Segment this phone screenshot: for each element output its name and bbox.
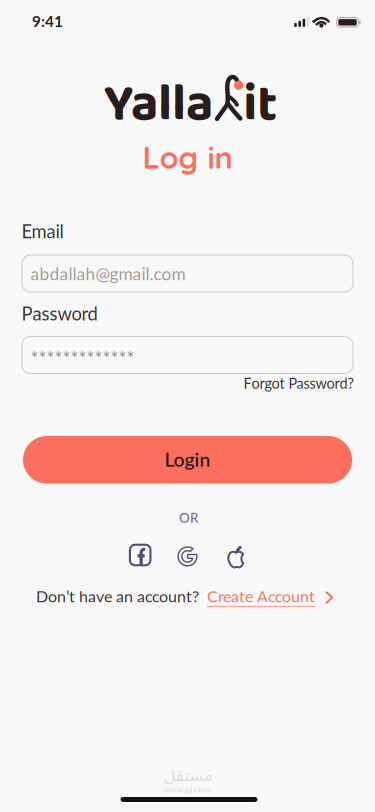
staticText: ************* <box>30 347 134 369</box>
staticText: Don’t have an account? <box>36 586 199 606</box>
staticText: it <box>243 64 277 146</box>
staticText: Create Account <box>207 586 315 606</box>
staticText: Log in <box>142 138 232 176</box>
staticText: Yalla <box>104 64 213 146</box>
staticText: Password <box>21 302 97 324</box>
staticText: mostaql.com <box>164 785 210 794</box>
button[interactable]: Forgot Password? <box>243 375 353 392</box>
staticText: abdallah@gmail.com <box>30 263 185 284</box>
staticText: OR <box>179 510 198 526</box>
staticText: 9:41 <box>32 12 63 30</box>
staticText: مستقل <box>163 759 211 793</box>
button[interactable]: Sign in with Facebook <box>129 544 151 566</box>
button[interactable]: Login <box>23 436 352 484</box>
staticText: Login <box>164 448 210 471</box>
staticText: Email <box>21 220 63 242</box>
staticText: Forgot Password? <box>243 375 353 392</box>
button[interactable]: abdallah@gmail.com <box>21 254 353 292</box>
button[interactable]: Create Account <box>207 586 335 606</box>
button[interactable]: Sign in with Apple <box>224 544 248 568</box>
button[interactable]: ************* <box>21 336 353 374</box>
button[interactable]: Sign in with Google <box>175 544 199 568</box>
